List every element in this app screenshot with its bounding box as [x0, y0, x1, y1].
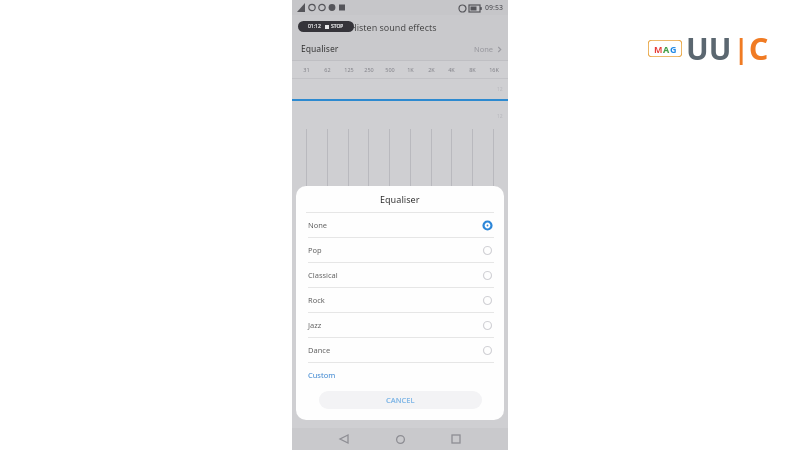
staticText: 4K	[448, 66, 455, 73]
staticText: 250	[364, 66, 374, 73]
staticText: 2K	[428, 66, 435, 73]
staticText: 62	[324, 66, 331, 73]
staticText: M	[654, 43, 663, 55]
staticText: Equaliser	[301, 43, 339, 55]
staticText: UU	[686, 28, 732, 69]
staticText: None	[474, 44, 494, 54]
button[interactable]: Pop	[296, 238, 504, 262]
button[interactable]: Back	[336, 431, 352, 447]
staticText: 16K	[489, 66, 499, 73]
staticText: None	[308, 220, 328, 230]
staticText: 1K	[407, 66, 414, 73]
staticText: 12	[497, 113, 503, 120]
staticText: Rock	[308, 295, 325, 305]
staticText: 500	[385, 66, 395, 73]
button[interactable]: Home	[392, 431, 408, 447]
button[interactable]: Equaliser	[292, 38, 508, 60]
button[interactable]: None	[296, 213, 504, 237]
staticText: Pop	[308, 245, 322, 255]
staticText: STOP	[331, 23, 344, 30]
staticText: Histen sound effects	[350, 21, 437, 33]
staticText: 31	[303, 66, 310, 73]
button[interactable]: Classical	[296, 263, 504, 287]
staticText: C	[749, 28, 769, 69]
staticText: CANCEL	[386, 395, 415, 405]
staticText: Equaliser	[380, 193, 420, 205]
staticText: 09:53	[485, 3, 503, 13]
button[interactable]: Jazz	[296, 313, 504, 337]
staticText: A	[663, 43, 670, 55]
staticText: |	[734, 31, 749, 66]
button[interactable]: Recents	[448, 431, 464, 447]
staticText: Custom	[308, 370, 336, 380]
staticText: 01:12	[308, 23, 321, 30]
staticText: 12	[497, 86, 503, 93]
staticText: 125	[344, 66, 354, 73]
staticText: Dance	[308, 345, 331, 355]
staticText: Classical	[308, 270, 338, 280]
staticText: G	[670, 43, 677, 55]
button[interactable]: CANCEL	[319, 391, 482, 409]
staticText: 8K	[469, 66, 476, 73]
button[interactable]: Custom	[296, 363, 504, 387]
staticText: Jazz	[308, 320, 322, 330]
button[interactable]: Dance	[296, 338, 504, 362]
button[interactable]: Rock	[296, 288, 504, 312]
